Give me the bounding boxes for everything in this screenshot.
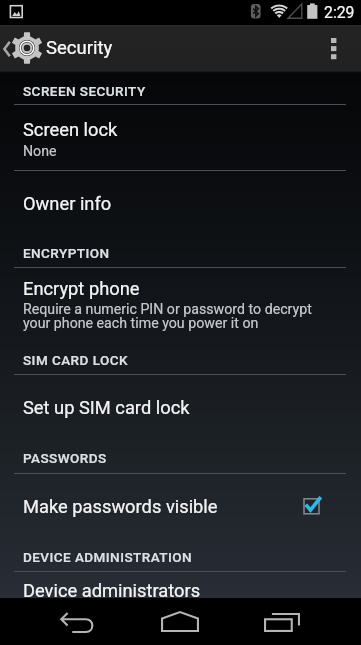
button[interactable]: Set up SIM card lock <box>0 374 361 437</box>
staticText: your phone each time you power it on <box>23 315 259 332</box>
button[interactable]: Encrypt phone <box>0 267 361 340</box>
staticText: 2:29 <box>324 3 355 22</box>
button[interactable]: Recent apps <box>243 598 321 645</box>
staticText: None <box>23 143 57 160</box>
button[interactable]: More options <box>318 25 361 73</box>
button[interactable]: Device administrators <box>0 571 361 598</box>
staticText: SIM CARD LOCK <box>23 352 128 368</box>
staticText: Encrypt phone <box>23 278 140 299</box>
button[interactable]: Screen lock, None <box>0 104 361 170</box>
button[interactable]: Navigate up <box>0 25 118 73</box>
staticText: Device administrators <box>23 580 201 601</box>
staticText: Owner info <box>23 193 112 214</box>
staticText: ENCRYPTION <box>23 245 110 261</box>
button[interactable]: Make passwords visible <box>298 493 324 519</box>
button[interactable]: Make passwords visible <box>0 473 361 537</box>
staticText: DEVICE ADMINISTRATION <box>23 549 192 565</box>
staticText: PASSWORDS <box>23 450 107 466</box>
staticText: SCREEN SECURITY <box>23 83 146 99</box>
button[interactable]: Owner info <box>0 170 361 231</box>
staticText: Require a numeric PIN or password to dec… <box>23 301 312 318</box>
button[interactable]: Back <box>40 598 118 645</box>
staticText: Set up SIM card lock <box>23 397 190 418</box>
staticText: Security <box>46 37 113 59</box>
button[interactable]: Home <box>141 598 219 645</box>
staticText: Make passwords visible <box>23 496 218 517</box>
staticText: Screen lock <box>23 119 118 140</box>
